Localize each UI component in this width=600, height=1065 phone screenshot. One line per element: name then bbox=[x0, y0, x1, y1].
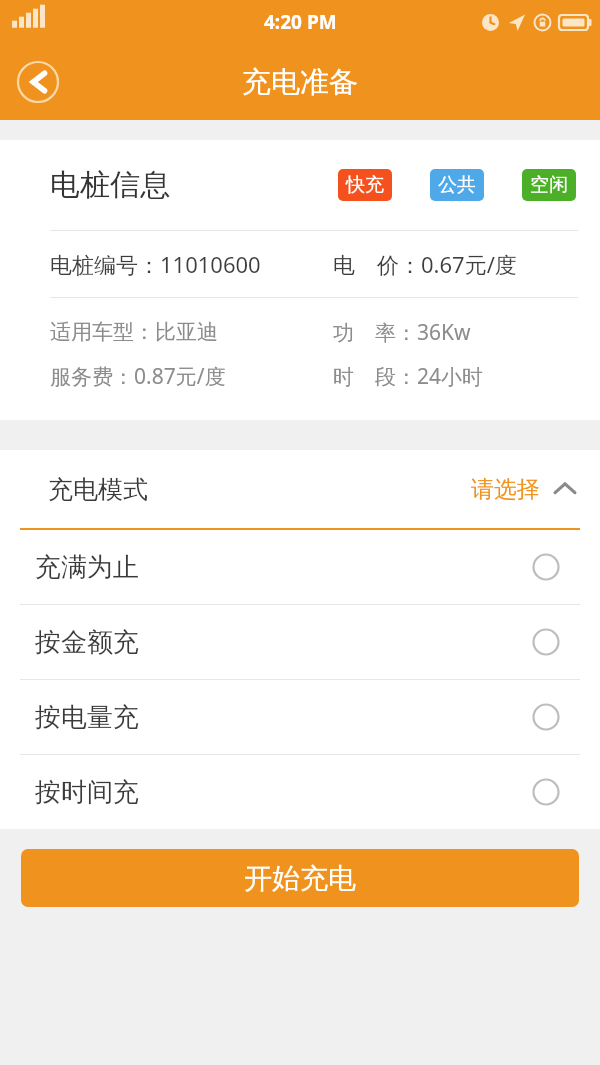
staticText: 按金额充 bbox=[35, 626, 139, 659]
button[interactable]: Back bbox=[12, 56, 64, 108]
staticText: 充电准备 bbox=[242, 64, 358, 101]
staticText: 电 价：0.67元/度 bbox=[333, 249, 517, 279]
staticText: 充满为止 bbox=[35, 551, 139, 584]
staticText: 空闲 bbox=[530, 173, 568, 197]
staticText: 请选择 bbox=[471, 475, 540, 504]
staticText: 适用车型：比亚迪 bbox=[50, 319, 218, 345]
staticText: 服务费：0.87元/度 bbox=[50, 362, 226, 391]
button[interactable]: 开始充电 bbox=[21, 849, 579, 907]
staticText: 4:20 PM bbox=[264, 9, 337, 35]
button[interactable]: 公共 bbox=[430, 169, 484, 201]
button[interactable]: 充电模式 bbox=[0, 450, 600, 528]
staticText: 充电模式 bbox=[48, 474, 148, 505]
staticText: 功 率：36Kw bbox=[333, 318, 471, 347]
staticText: 电桩信息 bbox=[50, 166, 170, 204]
button[interactable]: 按时间充 bbox=[0, 755, 600, 829]
staticText: 电桩编号：11010600 bbox=[50, 249, 261, 279]
button[interactable]: 充满为止 bbox=[0, 530, 600, 604]
staticText: 公共 bbox=[438, 173, 476, 197]
button[interactable]: 按金额充 bbox=[0, 605, 600, 679]
staticText: 时 段：24小时 bbox=[333, 362, 484, 391]
staticText: 按电量充 bbox=[35, 701, 139, 734]
staticText: 按时间充 bbox=[35, 776, 139, 809]
button[interactable]: 快充 bbox=[338, 169, 392, 201]
button[interactable]: 空闲 bbox=[522, 169, 576, 201]
staticText: 开始充电 bbox=[244, 861, 356, 896]
staticText: 快充 bbox=[346, 173, 384, 197]
button[interactable]: 按电量充 bbox=[0, 680, 600, 754]
